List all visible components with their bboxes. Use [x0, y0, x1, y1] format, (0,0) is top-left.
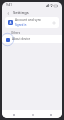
staticText: 9:41: [6, 3, 12, 7]
button[interactable]: Back: [5, 10, 11, 16]
staticText: Settings: [13, 10, 29, 15]
staticText: Account and sync: [15, 18, 42, 22]
button[interactable]: More options: [52, 21, 56, 25]
button[interactable]: Account and sync: [5, 17, 59, 28]
button[interactable]: Home: [30, 112, 35, 117]
staticText: About device: [12, 37, 31, 41]
staticText: Others: [11, 31, 21, 35]
staticText: Signed in: [15, 23, 27, 27]
button[interactable]: About device: [2, 35, 62, 43]
button[interactable]: Recent apps: [48, 112, 53, 117]
button[interactable]: Back: [11, 112, 16, 117]
